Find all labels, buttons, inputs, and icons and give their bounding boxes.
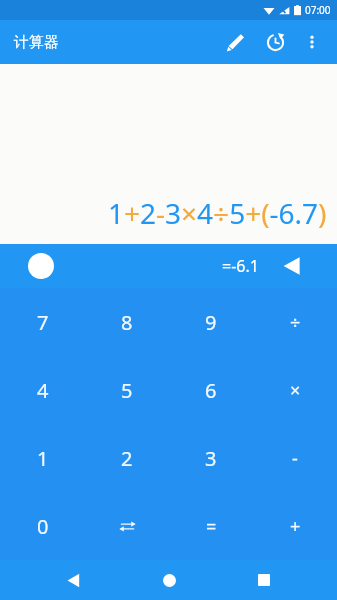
staticText: 0 bbox=[37, 513, 49, 540]
staticText: × bbox=[290, 378, 301, 403]
button[interactable]: 1+2-3×4÷5+(-6.7) bbox=[0, 64, 337, 244]
button[interactable]: × bbox=[253, 356, 337, 424]
staticText: 07:00 bbox=[305, 3, 331, 17]
button[interactable]: 6 bbox=[169, 356, 253, 424]
button[interactable]: Back bbox=[51, 560, 95, 600]
staticText: 7 bbox=[37, 309, 49, 336]
button[interactable]: 9 bbox=[169, 288, 253, 356]
button[interactable]: History bbox=[255, 22, 295, 62]
staticText: 8 bbox=[121, 309, 133, 336]
staticText: 1+2-3×4÷5+(-6.7) bbox=[108, 194, 327, 232]
staticText: = bbox=[206, 514, 217, 539]
button[interactable]: 2 bbox=[85, 424, 169, 492]
button[interactable]: 7 bbox=[0, 288, 85, 356]
staticText: - bbox=[292, 446, 298, 471]
button[interactable]: 0 bbox=[0, 492, 85, 560]
button[interactable]: 4 bbox=[0, 356, 85, 424]
button[interactable]: 3 bbox=[169, 424, 253, 492]
button[interactable]: Swap bbox=[85, 492, 169, 560]
staticText: 3 bbox=[205, 445, 217, 472]
button[interactable]: ÷ bbox=[253, 288, 337, 356]
button[interactable]: + bbox=[253, 492, 337, 560]
button[interactable]: Edit bbox=[215, 22, 255, 62]
staticText: 9 bbox=[205, 309, 217, 336]
button[interactable]: Home bbox=[147, 560, 191, 600]
staticText: ÷ bbox=[290, 310, 301, 335]
button[interactable]: 5 bbox=[85, 356, 169, 424]
button[interactable]: - bbox=[253, 424, 337, 492]
button[interactable]: 1 bbox=[0, 424, 85, 492]
button[interactable]: Recent apps bbox=[242, 560, 286, 600]
staticText: 6 bbox=[205, 377, 217, 404]
staticText: 5 bbox=[121, 377, 133, 404]
button[interactable]: Backspace bbox=[275, 249, 309, 283]
button[interactable]: = bbox=[169, 492, 253, 560]
staticText: 4 bbox=[37, 377, 49, 404]
button[interactable]: 8 bbox=[85, 288, 169, 356]
staticText: =-6.1 bbox=[222, 255, 259, 277]
staticText: 计算器 bbox=[14, 33, 59, 52]
button[interactable]: Clear bbox=[24, 249, 58, 283]
button[interactable]: More options bbox=[295, 25, 329, 59]
staticText: 2 bbox=[121, 445, 133, 472]
staticText: + bbox=[290, 514, 301, 539]
staticText: 1 bbox=[37, 445, 49, 472]
